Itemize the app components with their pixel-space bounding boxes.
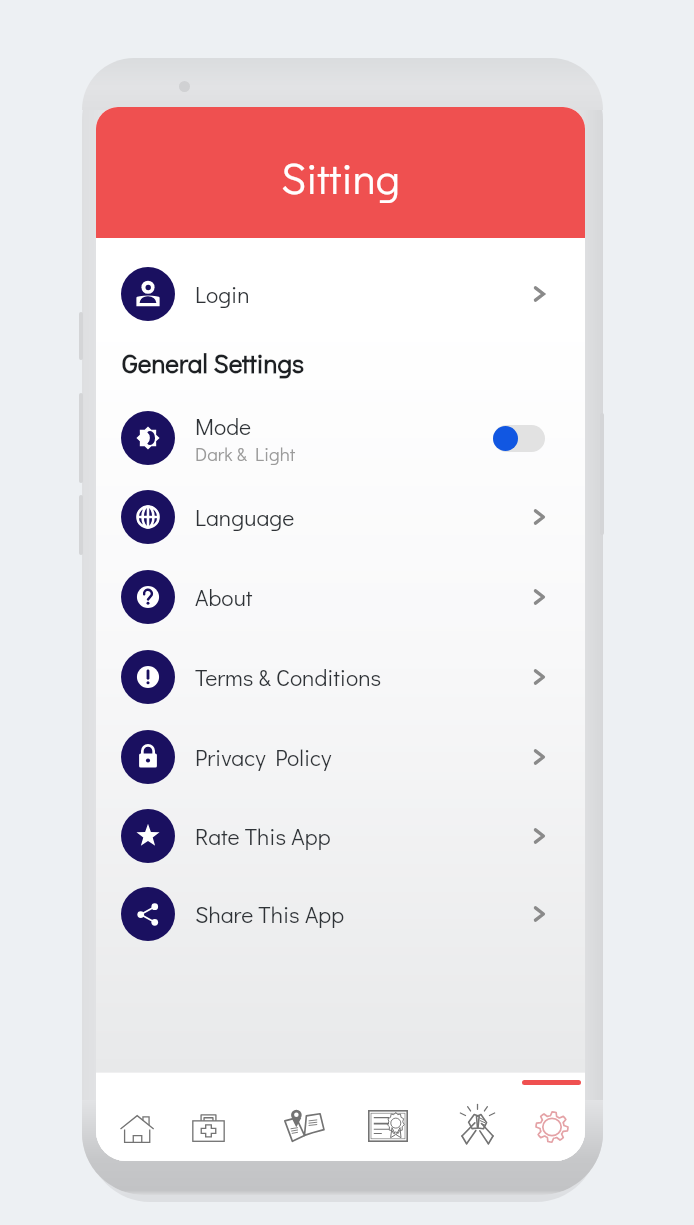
- staticText: Dark & Light: [195, 441, 296, 466]
- button[interactable]: Share This App: [96, 874, 585, 954]
- button[interactable]: Settings: [517, 1092, 585, 1161]
- staticText: About: [195, 582, 253, 612]
- button[interactable]: Toggle dark and light mode: [493, 425, 545, 452]
- other: Open: [528, 283, 550, 305]
- button[interactable]: Privacy Policy: [96, 717, 585, 797]
- other: Open: [528, 586, 550, 608]
- button[interactable]: Language: [96, 477, 585, 557]
- button[interactable]: Map: [269, 1092, 339, 1161]
- button[interactable]: Certificate: [353, 1092, 423, 1161]
- other: Open: [528, 825, 550, 847]
- staticText: Terms & Conditions: [195, 662, 382, 692]
- staticText: Mode: [195, 411, 252, 441]
- button[interactable]: Terms & Conditions: [96, 637, 585, 717]
- button[interactable]: First aid: [173, 1092, 243, 1161]
- staticText: Login: [195, 279, 250, 309]
- button[interactable]: Login: [96, 254, 585, 334]
- staticText: Share This App: [195, 899, 345, 929]
- staticText: Rate This App: [195, 821, 331, 851]
- staticText: Sitting: [281, 149, 400, 205]
- other: Open: [528, 666, 550, 688]
- staticText: Language: [195, 502, 295, 532]
- button[interactable]: Support: [442, 1092, 512, 1161]
- other: Open: [528, 903, 550, 925]
- staticText: General Settings: [122, 346, 305, 380]
- other: Open: [528, 746, 550, 768]
- button[interactable]: About: [96, 557, 585, 637]
- staticText: Privacy Policy: [195, 742, 332, 772]
- other: Open: [528, 506, 550, 528]
- button[interactable]: Home: [102, 1092, 172, 1161]
- button[interactable]: Mode: [96, 398, 585, 478]
- button[interactable]: Rate This App: [96, 796, 585, 876]
